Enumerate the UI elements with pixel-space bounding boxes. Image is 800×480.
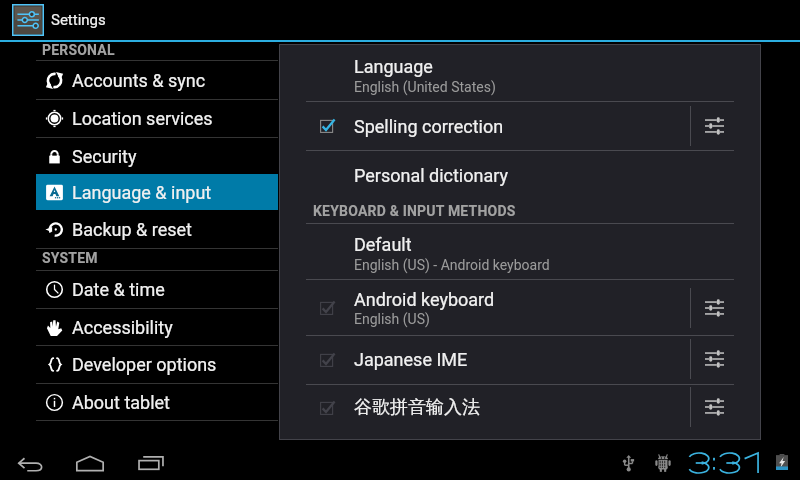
staticText: Personal dictionary — [354, 165, 509, 186]
staticText: English (United States) — [354, 79, 496, 95]
button[interactable]: Default — [354, 230, 412, 258]
button[interactable]: Developer options — [36, 346, 278, 382]
staticText: English (US) — [354, 311, 430, 327]
staticText: Default — [354, 234, 412, 255]
staticText: Accounts & sync — [72, 70, 206, 91]
staticText: 谷歌拼音输入法 — [354, 396, 480, 419]
staticText: Developer options — [72, 354, 217, 375]
button[interactable]: Date & time — [36, 271, 278, 307]
button[interactable]: USB connected — [609, 446, 647, 480]
button[interactable]: Personal dictionary — [354, 161, 509, 189]
staticText: Settings — [51, 11, 106, 29]
button[interactable]: Input method settings — [692, 288, 736, 328]
button[interactable]: Input method settings — [692, 339, 736, 379]
button[interactable]: 谷歌拼音输入法 — [354, 393, 480, 421]
button[interactable]: Home — [71, 446, 109, 480]
button[interactable]: Backup & reset — [36, 211, 278, 247]
staticText: Language — [354, 56, 433, 77]
staticText: Date & time — [72, 279, 165, 300]
button[interactable]: Spelling correction — [354, 112, 504, 140]
staticText: SYSTEM — [42, 250, 98, 266]
staticText: Android keyboard — [354, 289, 495, 310]
button[interactable]: Security — [36, 138, 278, 174]
button[interactable] — [36, 174, 278, 210]
staticText: Accessibility — [72, 317, 173, 338]
button[interactable]: 3:31 — [684, 445, 768, 480]
button[interactable]: Toggle — [313, 346, 345, 378]
button[interactable]: Android keyboard — [354, 285, 495, 313]
staticText: Language & input — [72, 182, 212, 203]
button[interactable]: Accounts & sync — [36, 62, 278, 98]
staticText: PERSONAL — [42, 42, 115, 58]
button[interactable]: Toggle — [313, 112, 345, 144]
button[interactable]: Back — [11, 447, 49, 480]
staticText: English (US) - Android keyboard — [354, 257, 550, 273]
button[interactable]: Toggle — [313, 394, 345, 426]
staticText: Security — [72, 146, 137, 167]
button[interactable]: Language — [354, 52, 433, 80]
button[interactable]: Language & input — [36, 174, 278, 210]
button[interactable]: Input method settings — [692, 106, 736, 146]
button[interactable]: About tablet — [36, 384, 278, 420]
button[interactable]: Toggle — [313, 294, 345, 326]
staticText: Japanese IME — [354, 349, 468, 370]
button[interactable]: Japanese IME — [354, 345, 468, 373]
button[interactable]: Recent apps — [132, 446, 170, 480]
staticText: Location services — [72, 108, 213, 129]
staticText: Spelling correction — [354, 116, 504, 137]
button[interactable]: Battery charging — [763, 445, 800, 479]
button[interactable]: Accessibility — [36, 309, 278, 345]
button[interactable]: Input method settings — [692, 387, 736, 427]
button[interactable]: Location services — [36, 100, 278, 136]
button[interactable]: USB debugging — [644, 446, 682, 480]
staticText: KEYBOARD & INPUT METHODS — [313, 203, 516, 219]
button[interactable]: Settings — [0, 0, 800, 40]
staticText: Backup & reset — [72, 219, 192, 240]
staticText: About tablet — [72, 392, 170, 413]
